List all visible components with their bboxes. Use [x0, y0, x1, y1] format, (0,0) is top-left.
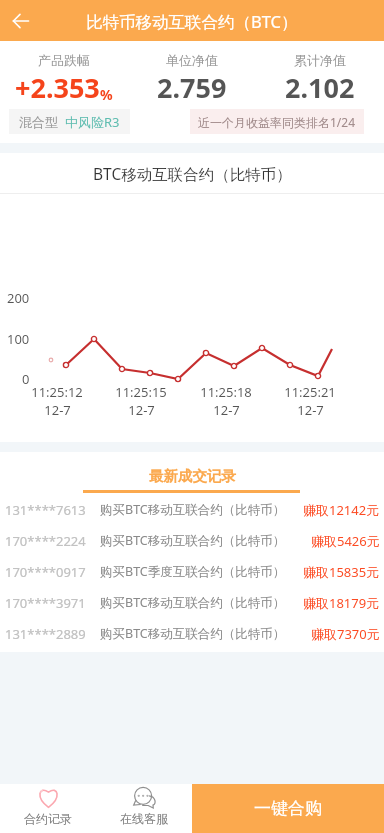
staticText: 131****2889: [5, 625, 86, 643]
staticText: 一键合购: [254, 798, 322, 819]
staticText: 最新成交记录: [149, 467, 236, 485]
staticText: 比特币移动互联合约（BTC）: [86, 10, 298, 33]
button[interactable]: 合约记录: [0, 784, 96, 833]
staticText: 赚取15835元: [303, 563, 380, 581]
staticText: 购买BTC季度互联合约（比特币）: [100, 563, 286, 580]
button[interactable]: 在线客服: [96, 784, 192, 833]
staticText: 200: [7, 289, 30, 307]
button[interactable]: 170****2224: [0, 525, 384, 556]
staticText: 11:25:15: [115, 383, 167, 401]
button[interactable]: 131****2889: [0, 618, 384, 649]
staticText: BTC移动互联合约（比特币）: [93, 163, 292, 184]
staticText: 11:25:12: [31, 383, 83, 401]
staticText: 购买BTC移动互联合约（比特币）: [100, 532, 286, 549]
staticText: 11:25:18: [200, 383, 252, 401]
staticText: 赚取7370元: [311, 625, 380, 643]
staticText: 12-7: [128, 401, 155, 419]
staticText: 中风险R3: [65, 113, 120, 131]
staticText: 累计净值: [294, 52, 346, 68]
staticText: 2.759: [157, 69, 227, 106]
staticText: 购买BTC移动互联合约（比特币）: [100, 501, 286, 518]
staticText: 产品跌幅: [38, 52, 90, 68]
staticText: 在线客服: [120, 811, 168, 826]
staticText: 2.102: [285, 69, 355, 106]
staticText: 赚取12142元: [303, 501, 380, 519]
staticText: 赚取18179元: [303, 594, 380, 612]
button[interactable]: 170****0917: [0, 556, 384, 587]
staticText: 170****0917: [5, 563, 86, 581]
staticText: 购买BTC移动互联合约（比特币）: [100, 625, 286, 642]
button[interactable]: 170****3971: [0, 587, 384, 618]
staticText: 12-7: [297, 401, 324, 419]
staticText: 近一个月收益率同类排名1/24: [198, 114, 356, 130]
staticText: 131****7613: [5, 501, 86, 519]
staticText: 12-7: [44, 401, 71, 419]
staticText: 混合型: [19, 114, 58, 130]
staticText: 0: [22, 370, 30, 388]
button[interactable]: Back: [0, 0, 41, 41]
staticText: 单位净值: [166, 52, 218, 68]
staticText: +2.353: [15, 69, 100, 106]
staticText: 购买BTC移动互联合约（比特币）: [100, 594, 286, 611]
button[interactable]: 131****7613: [0, 494, 384, 525]
staticText: 12-7: [213, 401, 240, 419]
button[interactable]: 一键合购: [192, 784, 384, 833]
staticText: %: [100, 85, 113, 104]
staticText: 170****3971: [5, 594, 86, 612]
staticText: 赚取5426元: [311, 532, 380, 550]
staticText: 11:25:21: [284, 383, 336, 401]
staticText: 170****2224: [5, 532, 86, 550]
staticText: 100: [7, 330, 30, 348]
staticText: 合约记录: [24, 811, 72, 826]
